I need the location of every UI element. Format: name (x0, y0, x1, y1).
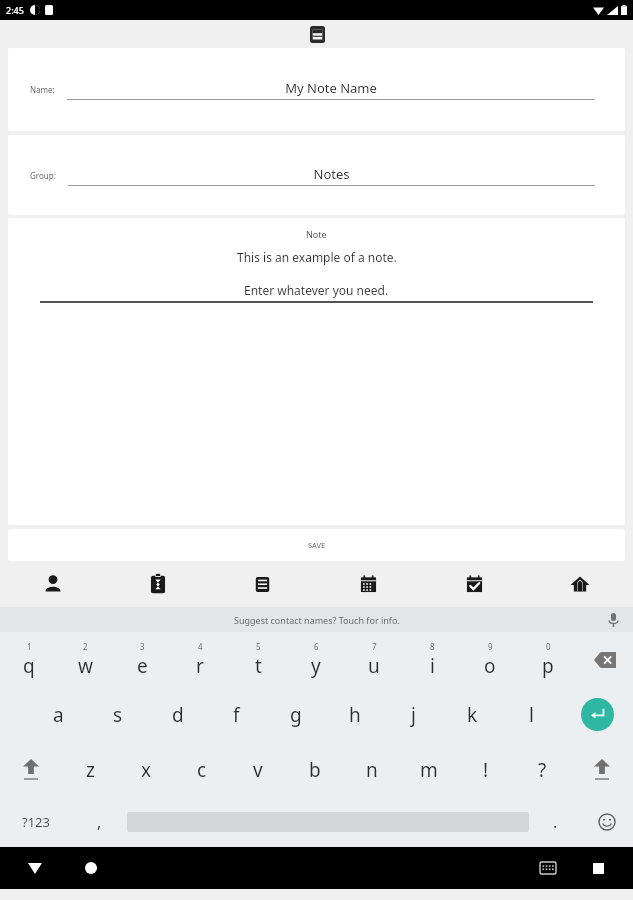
staticText: Notes (68, 165, 595, 183)
staticText: o (484, 653, 496, 679)
staticText: j (411, 702, 416, 728)
button[interactable]: Emoji (581, 797, 633, 847)
button[interactable]: 7 (345, 632, 403, 687)
staticText: ? (538, 757, 547, 783)
staticText: ! (483, 757, 489, 783)
staticText: m (420, 757, 438, 783)
button[interactable]: Home (527, 561, 633, 607)
staticText: 2 (83, 641, 88, 652)
staticText: Suggest contact names? Touch for info. (234, 614, 400, 626)
staticText: i (430, 653, 435, 679)
staticText: 9 (488, 641, 493, 652)
staticText: 1 (27, 641, 32, 652)
staticText: This is an example of a note. (237, 249, 397, 265)
button[interactable]: Enter (561, 687, 633, 742)
button[interactable]: Hide keyboard (535, 855, 561, 881)
button[interactable]: 5 (229, 632, 287, 687)
staticText: r (196, 653, 204, 679)
button[interactable]: Shift (0, 742, 62, 797)
button[interactable]: 3 (114, 632, 171, 687)
button[interactable]: Note list (307, 24, 327, 44)
staticText: q (23, 653, 35, 679)
staticText: l (529, 702, 534, 728)
staticText: b (309, 757, 321, 783)
staticText: z (86, 757, 95, 783)
button[interactable]: . (529, 797, 581, 847)
button[interactable]: 1 (0, 632, 57, 687)
staticText: c (197, 757, 207, 783)
button[interactable]: f (207, 687, 266, 742)
button[interactable]: Home (78, 855, 104, 881)
staticText: Name: (30, 84, 55, 95)
button[interactable]: ? (514, 742, 571, 797)
button[interactable]: v (230, 742, 286, 797)
button[interactable]: x (118, 742, 174, 797)
staticText: h (349, 702, 361, 728)
button[interactable]: z (62, 742, 118, 797)
button[interactable]: 2 (57, 632, 114, 687)
button[interactable]: s (88, 687, 148, 742)
button[interactable]: ! (457, 742, 514, 797)
button[interactable]: Backspace (577, 632, 633, 687)
button[interactable]: Note (8, 218, 625, 525)
button[interactable]: l (502, 687, 561, 742)
button[interactable]: Calendar (315, 561, 421, 607)
button[interactable]: g (266, 687, 325, 742)
staticText: n (366, 757, 378, 783)
staticText: e (137, 653, 148, 679)
staticText: d (172, 702, 184, 728)
button[interactable]: Recent apps (585, 855, 611, 881)
staticText: 0 (546, 641, 551, 652)
button[interactable]: j (384, 687, 443, 742)
button[interactable]: Events (421, 561, 527, 607)
staticText: v (253, 757, 263, 783)
button[interactable]: k (443, 687, 502, 742)
button[interactable]: 6 (287, 632, 345, 687)
button[interactable]: Back (22, 855, 48, 881)
staticText: Note (306, 228, 327, 240)
staticText: 5 (256, 641, 261, 652)
button[interactable]: Space (127, 797, 529, 847)
button[interactable]: Shift (571, 742, 633, 797)
staticText: 8 (430, 641, 435, 652)
staticText: ?123 (22, 813, 50, 831)
button[interactable]: n (343, 742, 400, 797)
button[interactable]: Tasks (105, 561, 210, 607)
staticText: u (368, 653, 380, 679)
staticText: , (97, 811, 102, 833)
staticText: y (311, 653, 321, 679)
button[interactable]: Contacts (0, 561, 105, 607)
button[interactable]: Notes (210, 561, 315, 607)
button[interactable]: , (72, 797, 127, 847)
button[interactable]: Suggest contact names? Touch for info. (0, 607, 633, 632)
button[interactable]: Name: (8, 48, 625, 131)
button[interactable]: SAVE (8, 529, 625, 561)
staticText: a (53, 702, 64, 728)
staticText: p (542, 653, 554, 679)
staticText: 7 (372, 641, 377, 652)
staticText: Group: (30, 170, 56, 181)
staticText: SAVE (308, 540, 326, 550)
staticText: w (78, 653, 93, 679)
staticText: My Note Name (67, 79, 595, 97)
button[interactable]: a (28, 687, 88, 742)
button[interactable]: 4 (171, 632, 229, 687)
staticText: k (467, 702, 478, 728)
staticText: 4 (198, 641, 203, 652)
button[interactable]: d (148, 687, 207, 742)
staticText: t (255, 653, 262, 679)
button[interactable]: 9 (461, 632, 519, 687)
staticText: g (290, 702, 302, 728)
button[interactable]: ?123 (0, 797, 72, 847)
staticText: 2:45 (6, 4, 24, 16)
button[interactable]: m (400, 742, 457, 797)
button[interactable]: Group: (8, 135, 625, 215)
staticText: f (233, 702, 240, 728)
button[interactable]: 0 (519, 632, 577, 687)
staticText: . (553, 811, 558, 833)
button[interactable]: c (174, 742, 230, 797)
button[interactable]: b (286, 742, 343, 797)
button[interactable]: Voice input (603, 610, 623, 630)
button[interactable]: 8 (403, 632, 461, 687)
button[interactable]: h (325, 687, 384, 742)
